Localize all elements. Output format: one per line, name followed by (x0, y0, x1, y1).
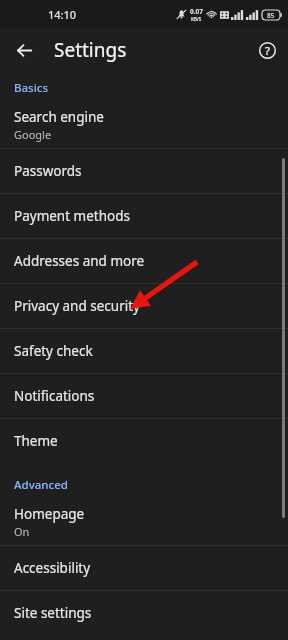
staticText: Search engine (14, 108, 104, 126)
button[interactable]: Site settings (0, 591, 288, 635)
staticText: Settings (54, 37, 127, 63)
button[interactable]: Privacy and security (0, 284, 288, 328)
staticText: Homepage (14, 505, 85, 523)
staticText: Google (14, 127, 52, 142)
button[interactable]: Passwords (0, 149, 288, 193)
button[interactable]: Search engine (0, 102, 288, 148)
staticText: Addresses and more (14, 252, 145, 270)
button[interactable]: Homepage (0, 499, 288, 545)
staticText: Advanced (14, 477, 68, 493)
staticText: Basics (14, 80, 49, 96)
button[interactable]: Safety check (0, 329, 288, 373)
staticText: Payment methods (14, 207, 130, 225)
staticText: Site settings (14, 604, 92, 622)
staticText: ? (265, 43, 270, 58)
button[interactable]: Back (9, 35, 39, 65)
staticText: Theme (14, 432, 58, 450)
staticText: Passwords (14, 162, 82, 180)
staticText: 0.07 (190, 7, 203, 16)
staticText: On (14, 524, 30, 539)
staticText: 85 (267, 11, 275, 20)
staticText: Notifications (14, 387, 95, 405)
staticText: Privacy and security (14, 297, 140, 315)
button[interactable]: Help (252, 35, 282, 65)
button[interactable]: Theme (0, 419, 288, 463)
staticText: Safety check (14, 342, 93, 360)
button[interactable]: Payment methods (0, 194, 288, 238)
staticText: KB/S (191, 16, 202, 22)
staticText: Accessibility (14, 559, 91, 577)
button[interactable]: Addresses and more (0, 239, 288, 283)
button[interactable]: Accessibility (0, 546, 288, 590)
button[interactable]: Notifications (0, 374, 288, 418)
staticText: 14:10 (48, 7, 77, 22)
